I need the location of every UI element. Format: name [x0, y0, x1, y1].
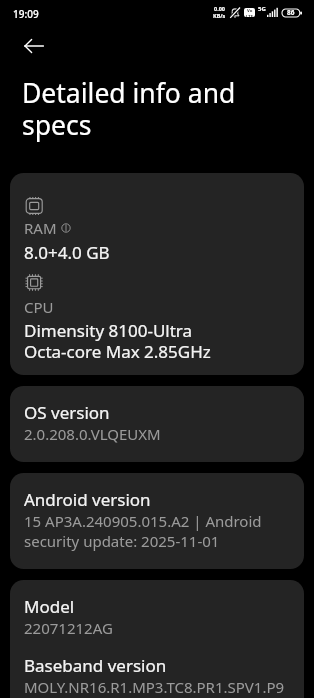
staticText: 22071212AG [24, 618, 113, 638]
staticText: 2.0.208.0.VLQEUXM [24, 424, 161, 444]
staticText: 15 AP3A.240905.015.A2 | Android security… [24, 511, 262, 551]
staticText: 0.00 [214, 5, 225, 12]
staticText: CPU [24, 297, 54, 317]
staticText: Baseband version [24, 654, 167, 677]
button[interactable]: RAM [10, 173, 304, 375]
staticText: 86 [287, 8, 295, 17]
staticText: MOLY.NR16.R1.MP3.TC8.PR1.SPV1.P9 [24, 677, 285, 697]
staticText: 5G [258, 5, 266, 13]
staticText: LTE [246, 14, 254, 17]
staticText: Android version [24, 488, 151, 511]
staticText: RAM [24, 218, 57, 238]
staticText: OS version [24, 401, 110, 424]
staticText: 19:09 [13, 7, 39, 21]
staticText: Model [24, 595, 75, 618]
button[interactable]: Back [24, 36, 44, 56]
staticText: Vo [247, 8, 253, 14]
staticText: 8.0+4.0 GB [24, 241, 110, 264]
staticText: KB/s [213, 12, 226, 19]
button[interactable]: Android version [10, 473, 304, 569]
staticText: Detailed info and specs [22, 75, 236, 143]
button[interactable]: OS version [10, 386, 304, 462]
button[interactable]: Model [10, 580, 304, 698]
staticText: Dimensity 8100-Ultra Octa-core Max 2.85G… [24, 319, 211, 363]
